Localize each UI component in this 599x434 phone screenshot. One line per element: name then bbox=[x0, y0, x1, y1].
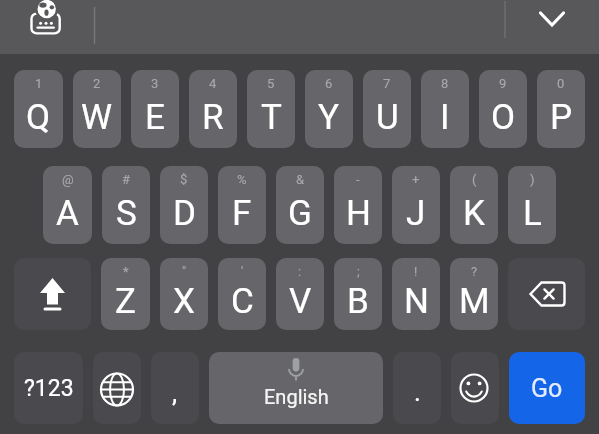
button[interactable]: ' bbox=[218, 258, 266, 330]
staticText: V bbox=[289, 281, 312, 322]
staticText: E bbox=[145, 97, 165, 138]
staticText: - bbox=[356, 172, 360, 187]
button[interactable]: English bbox=[209, 352, 383, 424]
button[interactable]: 8 bbox=[421, 70, 469, 148]
staticText: A bbox=[56, 193, 79, 234]
staticText: B bbox=[347, 281, 369, 322]
staticText: & bbox=[296, 172, 305, 187]
button[interactable]: # bbox=[102, 166, 150, 244]
staticText: 4 bbox=[209, 76, 217, 91]
staticText: 2 bbox=[93, 76, 101, 91]
staticText: L bbox=[523, 193, 542, 234]
staticText: I bbox=[440, 97, 450, 138]
staticText: 8 bbox=[441, 76, 449, 91]
button[interactable]: : bbox=[276, 258, 324, 330]
button[interactable]: * bbox=[101, 258, 150, 330]
staticText: Y bbox=[318, 97, 340, 138]
staticText: ; bbox=[357, 264, 360, 279]
button[interactable] bbox=[20, 0, 72, 46]
button[interactable] bbox=[93, 352, 141, 424]
button[interactable]: ; bbox=[334, 258, 382, 330]
staticText: 7 bbox=[383, 76, 391, 91]
staticText: X bbox=[173, 281, 195, 322]
button[interactable]: @ bbox=[43, 166, 92, 244]
button[interactable]: 1 bbox=[14, 70, 63, 148]
button[interactable]: . bbox=[393, 352, 441, 424]
staticText: ( bbox=[472, 172, 477, 187]
staticText: English bbox=[264, 385, 329, 408]
button[interactable]: 9 bbox=[479, 70, 527, 148]
staticText: 6 bbox=[325, 76, 333, 91]
button[interactable]: 6 bbox=[305, 70, 353, 148]
staticText: H bbox=[346, 193, 371, 234]
button[interactable]: + bbox=[392, 166, 440, 244]
staticText: F bbox=[232, 193, 252, 234]
staticText: 3 bbox=[151, 76, 159, 91]
staticText: Go bbox=[531, 374, 563, 403]
button[interactable] bbox=[451, 352, 499, 424]
staticText: O bbox=[491, 97, 516, 138]
staticText: G bbox=[288, 193, 312, 234]
button[interactable]: $ bbox=[160, 166, 208, 244]
button[interactable]: ) bbox=[508, 166, 556, 244]
staticText: 0 bbox=[557, 76, 565, 91]
staticText: N bbox=[404, 281, 429, 322]
button[interactable]: , bbox=[151, 352, 199, 424]
button[interactable] bbox=[508, 258, 585, 330]
button[interactable]: 4 bbox=[189, 70, 237, 148]
staticText: P bbox=[550, 97, 573, 138]
button[interactable]: 3 bbox=[131, 70, 179, 148]
staticText: 9 bbox=[499, 76, 507, 91]
staticText: T bbox=[261, 97, 282, 138]
button[interactable]: ( bbox=[450, 166, 498, 244]
staticText: U bbox=[376, 97, 399, 138]
staticText: C bbox=[231, 281, 254, 322]
staticText: S bbox=[116, 193, 137, 234]
button[interactable] bbox=[529, 3, 575, 35]
staticText: : bbox=[298, 264, 302, 279]
button[interactable]: 2 bbox=[73, 70, 121, 148]
staticText: ? bbox=[471, 264, 478, 279]
staticText: " bbox=[182, 264, 187, 279]
staticText: M bbox=[459, 281, 490, 322]
staticText: % bbox=[237, 172, 247, 187]
staticText: . bbox=[414, 377, 421, 407]
button[interactable]: - bbox=[334, 166, 382, 244]
button[interactable]: ? bbox=[450, 258, 498, 330]
button[interactable] bbox=[14, 258, 91, 330]
staticText: 1 bbox=[35, 76, 43, 91]
staticText: J bbox=[406, 193, 426, 234]
button[interactable]: 7 bbox=[363, 70, 411, 148]
staticText: D bbox=[173, 193, 196, 234]
staticText: Z bbox=[115, 281, 136, 322]
staticText: ?123 bbox=[24, 375, 74, 402]
button[interactable]: ! bbox=[392, 258, 440, 330]
staticText: * bbox=[123, 264, 129, 279]
button[interactable]: & bbox=[276, 166, 324, 244]
staticText: # bbox=[122, 172, 131, 187]
staticText: + bbox=[412, 172, 420, 187]
staticText: $ bbox=[180, 172, 188, 187]
staticText: ' bbox=[241, 264, 244, 279]
button[interactable]: 0 bbox=[537, 70, 585, 148]
button[interactable]: 5 bbox=[247, 70, 295, 148]
staticText: Q bbox=[26, 97, 51, 138]
staticText: , bbox=[172, 378, 178, 408]
staticText: 5 bbox=[267, 76, 275, 91]
button[interactable]: % bbox=[218, 166, 266, 244]
staticText: ) bbox=[530, 172, 535, 187]
staticText: R bbox=[202, 97, 224, 138]
staticText: K bbox=[463, 193, 485, 234]
staticText: W bbox=[81, 97, 113, 138]
staticText: @ bbox=[62, 172, 74, 187]
staticText: ! bbox=[414, 264, 418, 279]
button[interactable]: Go bbox=[509, 352, 585, 424]
button[interactable]: " bbox=[160, 258, 208, 330]
button[interactable]: ?123 bbox=[14, 352, 83, 424]
